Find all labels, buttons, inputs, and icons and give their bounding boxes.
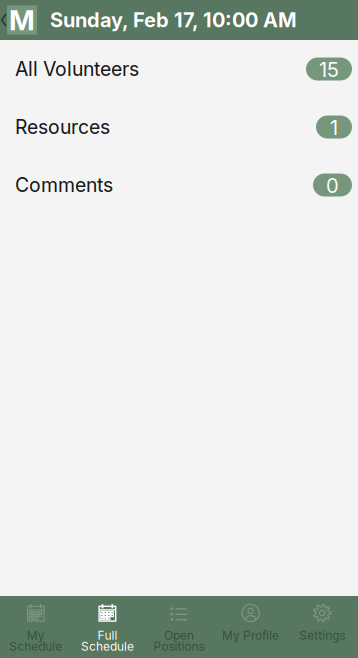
staticText: 1 bbox=[330, 115, 338, 138]
button[interactable]: Open Positions bbox=[143, 604, 215, 658]
button[interactable]: Back bbox=[0, 7, 7, 33]
staticText: M bbox=[9, 3, 35, 37]
staticText: Positions bbox=[153, 639, 204, 654]
staticText: 0 bbox=[326, 173, 339, 196]
staticText: Full bbox=[97, 628, 117, 643]
button[interactable]: All Volunteers bbox=[0, 40, 358, 98]
staticText: 15 bbox=[319, 57, 339, 80]
staticText: Schedule bbox=[81, 639, 134, 654]
staticText: Settings bbox=[299, 628, 345, 643]
button[interactable]: My Profile bbox=[215, 604, 286, 658]
button[interactable]: Settings bbox=[286, 604, 358, 658]
button[interactable]: Full Schedule bbox=[72, 604, 143, 658]
staticText: Comments bbox=[15, 173, 113, 197]
staticText: My bbox=[27, 628, 45, 643]
button[interactable]: Comments bbox=[0, 156, 358, 214]
staticText: Resources bbox=[15, 115, 110, 139]
button[interactable]: Resources bbox=[0, 98, 358, 156]
staticText: Schedule bbox=[9, 639, 62, 654]
staticText: Sunday, Feb 17, 10:00 AM bbox=[50, 8, 297, 32]
staticText: Open bbox=[164, 628, 194, 643]
staticText: All Volunteers bbox=[15, 57, 139, 81]
staticText: My Profile bbox=[222, 628, 279, 643]
button[interactable]: My Schedule bbox=[0, 604, 72, 658]
